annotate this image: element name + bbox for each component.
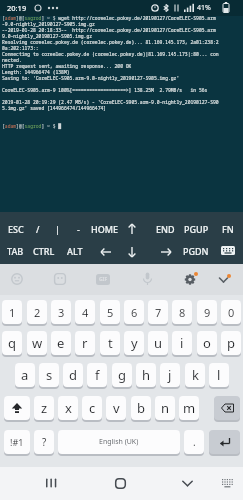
button[interactable]: a — [15, 363, 35, 388]
staticText: 4 — [82, 305, 89, 320]
button[interactable]: ALT — [58, 245, 92, 257]
staticText: 6 — [131, 305, 138, 320]
button[interactable]: k — [185, 363, 205, 388]
staticText: | — [55, 223, 60, 235]
button[interactable]: q — [2, 331, 22, 356]
button[interactable] — [222, 479, 234, 488]
button[interactable]: English (UK) — [58, 430, 180, 455]
button[interactable]: !#1 — [4, 430, 30, 455]
staticText: [adam]@[sagrod] ~ $ wget http://coreelec… — [2, 15, 219, 129]
staticText: 3 — [58, 305, 65, 320]
button[interactable]: b — [131, 396, 151, 421]
button[interactable]: o — [197, 331, 217, 356]
button[interactable] — [46, 478, 58, 489]
button[interactable]: c — [82, 396, 102, 421]
button[interactable]: - — [61, 223, 95, 235]
button[interactable]: t — [100, 331, 120, 356]
button[interactable] — [124, 244, 140, 260]
button[interactable] — [214, 396, 240, 421]
button[interactable]: 6 — [124, 300, 144, 325]
button[interactable]: s — [39, 363, 59, 388]
staticText: z — [41, 399, 48, 417]
button[interactable]: END — [148, 223, 182, 235]
staticText: 20:19 — [7, 3, 27, 13]
button[interactable] — [209, 430, 240, 455]
button[interactable]: PGDN — [179, 245, 213, 257]
button[interactable]: v — [106, 396, 126, 421]
button[interactable] — [124, 221, 140, 237]
button[interactable]: ESC — [0, 223, 33, 235]
staticText: PGUP — [184, 223, 209, 235]
button[interactable] — [98, 244, 114, 260]
button[interactable]: . — [184, 430, 204, 455]
button[interactable] — [115, 478, 126, 489]
button[interactable]: CTRL — [27, 245, 61, 257]
button[interactable]: h — [136, 363, 156, 388]
staticText: END — [156, 223, 175, 235]
staticText: ? — [42, 435, 47, 449]
button[interactable] — [142, 272, 153, 287]
button[interactable]: x — [58, 396, 78, 421]
staticText: g — [118, 366, 126, 384]
staticText: o — [203, 334, 211, 352]
button[interactable]: ? — [34, 430, 54, 455]
button[interactable]: 0 — [221, 300, 241, 325]
staticText: FN — [222, 223, 234, 235]
button[interactable]: n — [155, 396, 175, 421]
staticText: c — [89, 399, 96, 417]
button[interactable]: y — [124, 331, 144, 356]
button[interactable]: i — [172, 331, 192, 356]
button[interactable]: u — [148, 331, 168, 356]
button[interactable]: w — [27, 331, 47, 356]
button[interactable]: d — [63, 363, 83, 388]
button[interactable]: 5 — [100, 300, 120, 325]
staticText: y — [131, 334, 138, 352]
staticText: ESC — [8, 223, 24, 235]
staticText: 9 — [204, 305, 211, 320]
staticText: j — [168, 366, 172, 384]
staticText: 41% — [197, 3, 211, 13]
staticText: 0 — [228, 305, 235, 320]
staticText: r — [82, 334, 88, 352]
button[interactable]: 1 — [2, 300, 22, 325]
button[interactable]: 3 — [51, 300, 71, 325]
button[interactable]: r — [75, 331, 95, 356]
button[interactable]: j — [160, 363, 180, 388]
staticText: GIF — [99, 276, 108, 283]
staticText: a — [21, 366, 29, 384]
button[interactable] — [158, 244, 174, 260]
button[interactable] — [54, 273, 66, 285]
button[interactable] — [11, 273, 23, 285]
button[interactable]: PGUP — [179, 223, 213, 235]
staticText: m — [183, 399, 196, 417]
button[interactable]: e — [51, 331, 71, 356]
button[interactable]: p — [221, 331, 241, 356]
staticText: x — [65, 399, 72, 417]
button[interactable] — [182, 480, 193, 488]
button[interactable] — [183, 272, 198, 287]
button[interactable]: 9 — [197, 300, 217, 325]
button[interactable]: 4 — [75, 300, 95, 325]
button[interactable]: z — [34, 396, 54, 421]
staticText: 8 — [179, 305, 186, 320]
button[interactable]: / — [21, 223, 55, 235]
staticText: n — [161, 399, 170, 417]
staticText: d — [69, 366, 77, 384]
button[interactable]: | — [40, 223, 74, 235]
button[interactable]: 7 — [148, 300, 168, 325]
button[interactable]: 2 — [27, 300, 47, 325]
button[interactable]: 8 — [172, 300, 192, 325]
button[interactable]: m — [179, 396, 199, 421]
button[interactable] — [218, 274, 231, 286]
button[interactable]: f — [87, 363, 107, 388]
button[interactable]: FN — [211, 223, 243, 235]
button[interactable]: g — [112, 363, 132, 388]
button[interactable]: TAB — [0, 245, 32, 257]
button[interactable]: GIF — [96, 274, 110, 285]
staticText: f — [95, 366, 100, 384]
button[interactable]: l — [209, 363, 229, 388]
staticText: t — [108, 334, 113, 352]
button[interactable] — [4, 396, 30, 421]
staticText: s — [46, 366, 53, 384]
button[interactable]: HOME — [88, 223, 122, 235]
